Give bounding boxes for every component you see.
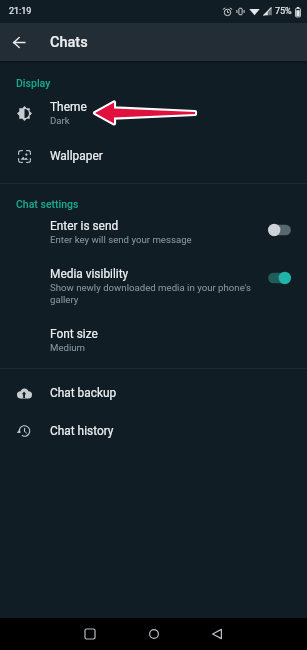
- staticText: Media visibility: [50, 267, 129, 281]
- staticText: Dark: [50, 115, 70, 126]
- button[interactable]: Font size: [0, 322, 307, 358]
- staticText: Wallpaper: [50, 149, 103, 163]
- staticText: Chat backup: [50, 386, 117, 400]
- staticText: Display: [16, 77, 51, 89]
- staticText: Chat history: [50, 424, 114, 438]
- staticText: 75%: [275, 6, 292, 17]
- button[interactable]: Wallpaper: [0, 139, 307, 173]
- button[interactable]: Enter is send: [0, 219, 307, 252]
- staticText: Enter key will send your message: [50, 234, 192, 245]
- staticText: 21:19: [9, 6, 32, 17]
- staticText: Font size: [50, 327, 98, 341]
- staticText: Enter is send: [50, 219, 119, 233]
- staticText: Chats: [50, 34, 88, 51]
- button[interactable]: Back: [201, 618, 233, 650]
- button[interactable]: Chat backup: [0, 375, 307, 411]
- button[interactable]: Chat history: [0, 413, 307, 449]
- staticText: Chat settings: [16, 198, 79, 210]
- button[interactable]: Media visibility: [0, 267, 307, 313]
- staticText: Theme: [50, 100, 87, 114]
- staticText: Show newly downloaded media in your phon…: [50, 282, 262, 305]
- button[interactable]: Home: [138, 618, 170, 650]
- staticText: Medium: [50, 342, 86, 353]
- button[interactable]: Theme: [0, 95, 307, 131]
- button[interactable]: Recent apps: [74, 618, 106, 650]
- button[interactable]: Back: [0, 23, 38, 61]
